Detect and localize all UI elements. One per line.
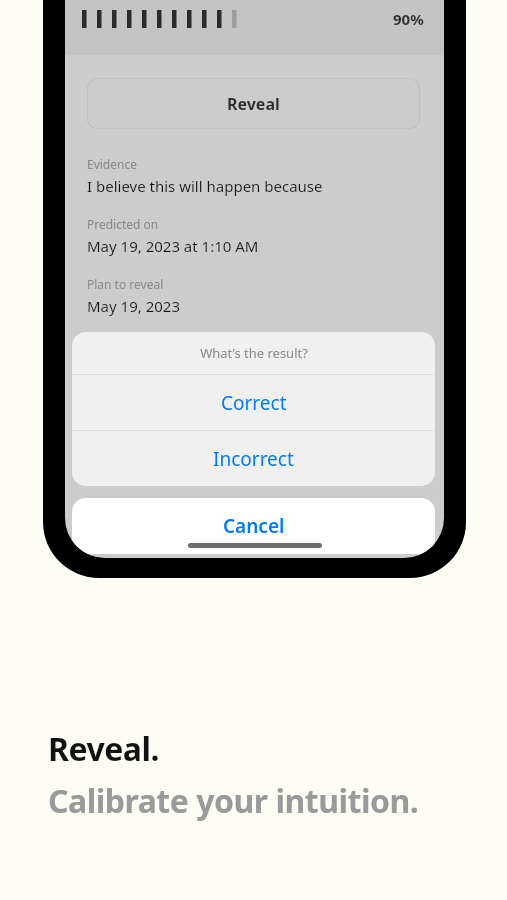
staticText: May 19, 2023 at 1:10 AM (87, 236, 259, 256)
staticText: I believe this will happen because (87, 176, 323, 196)
staticText: May 19, 2023 (87, 296, 180, 316)
staticText: What’s the result? (200, 344, 308, 362)
staticText: Predicted on (87, 216, 159, 232)
staticText: Calibrate your intuition. (48, 779, 419, 823)
staticText: Correct (221, 390, 287, 416)
staticText: Reveal. (48, 727, 160, 771)
staticText: 90% (393, 9, 424, 29)
button[interactable]: Correct (72, 375, 435, 430)
button[interactable]: Cancel (72, 498, 435, 554)
staticText: Incorrect (213, 446, 294, 472)
staticText: Reveal (227, 93, 280, 115)
staticText: Evidence (87, 156, 137, 172)
staticText: Cancel (223, 513, 285, 539)
button[interactable]: Reveal (87, 78, 420, 129)
staticText: Plan to reveal (87, 276, 164, 292)
button[interactable]: Incorrect (72, 431, 435, 486)
